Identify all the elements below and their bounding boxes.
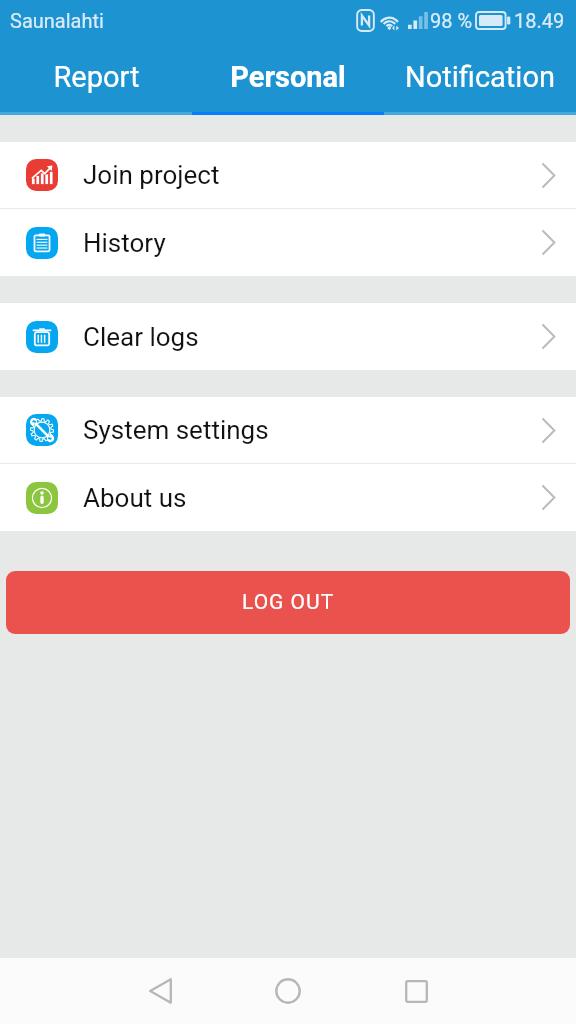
staticText: History bbox=[83, 228, 166, 258]
button[interactable]: Notification bbox=[384, 40, 576, 115]
staticText: 18.49 bbox=[514, 9, 565, 32]
button[interactable]: Home bbox=[260, 963, 316, 1019]
staticText: 98 % bbox=[430, 9, 473, 32]
button[interactable]: System settings bbox=[0, 397, 576, 463]
button[interactable]: Report bbox=[0, 40, 192, 115]
staticText: Join project bbox=[83, 160, 220, 190]
button[interactable]: Personal bbox=[192, 40, 384, 115]
staticText: System settings bbox=[83, 415, 269, 445]
button[interactable]: LOG OUT bbox=[6, 571, 570, 634]
staticText: Personal bbox=[230, 60, 346, 94]
staticText: LOG OUT bbox=[242, 590, 335, 615]
button[interactable]: Back bbox=[132, 963, 188, 1019]
button[interactable]: Join project bbox=[0, 142, 576, 208]
button[interactable]: History bbox=[0, 209, 576, 276]
staticText: Clear logs bbox=[83, 322, 199, 352]
button[interactable]: Recent apps bbox=[388, 963, 444, 1019]
staticText: Notification bbox=[405, 60, 555, 94]
staticText: Saunalahti bbox=[10, 9, 104, 32]
button[interactable]: About us bbox=[0, 464, 576, 531]
button[interactable]: Clear logs bbox=[0, 303, 576, 370]
staticText: Report bbox=[53, 60, 140, 94]
staticText: About us bbox=[83, 483, 187, 513]
